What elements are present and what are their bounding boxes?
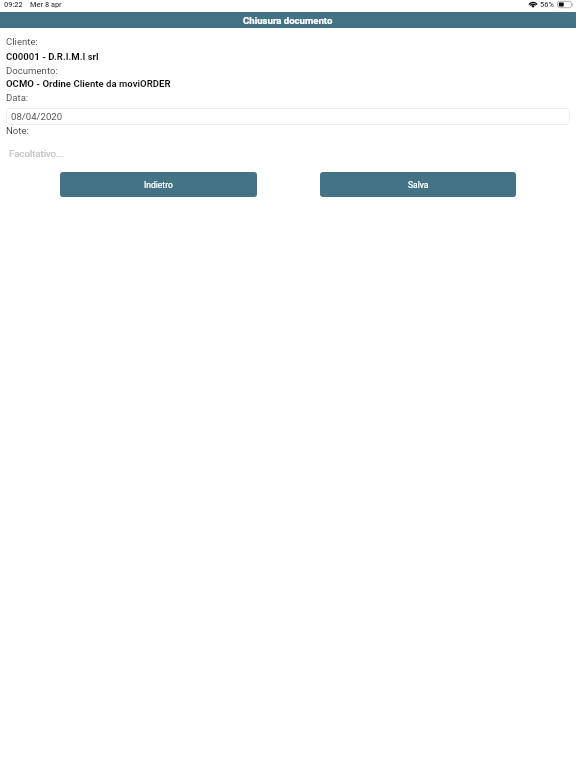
staticText: Documento: [6, 65, 58, 76]
button[interactable]: 08/04/2020 [6, 108, 570, 125]
button[interactable]: Salva [320, 172, 516, 197]
staticText: Cliente: [6, 36, 38, 47]
other: Battery 56 percent [557, 1, 573, 8]
staticText: 56% [540, 0, 554, 9]
staticText: Indietro [144, 180, 173, 190]
staticText: 08/04/2020 [11, 111, 63, 122]
other: Wi-Fi signal [529, 1, 537, 8]
button[interactable]: Facoltativo... [6, 143, 570, 163]
staticText: Facoltativo... [9, 148, 64, 159]
staticText: 09:22 [4, 0, 23, 9]
staticText: Salva [408, 180, 429, 190]
staticText: Chiusura documento [243, 15, 333, 26]
staticText: OCMO - Ordine Cliente da moviORDER [6, 78, 171, 89]
button[interactable]: Indietro [60, 172, 257, 197]
staticText: C00001 - D.R.I.M.I srl [6, 51, 99, 62]
staticText: Note: [6, 125, 29, 136]
staticText: Mer 8 apr [30, 0, 62, 9]
staticText: Data: [6, 92, 29, 103]
